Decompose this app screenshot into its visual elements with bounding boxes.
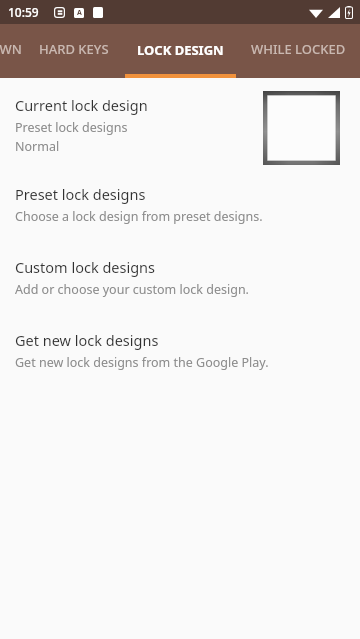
button[interactable]: Lock design preview <box>263 91 340 165</box>
button[interactable]: LOCK DESIGN <box>125 24 236 78</box>
staticText: Preset lock designs <box>15 184 146 204</box>
staticText: Get new lock designs <box>15 330 159 350</box>
staticText: LOCK DESIGN <box>137 41 224 59</box>
staticText: Get new lock designs from the Google Pla… <box>15 354 269 371</box>
button[interactable]: Custom lock designs <box>0 253 360 302</box>
staticText: Custom lock designs <box>15 257 155 277</box>
staticText: HARD KEYS <box>39 40 109 58</box>
button[interactable]: HARD KEYS <box>24 24 124 74</box>
button[interactable]: Current lock design <box>0 78 360 168</box>
button[interactable]: Preset lock designs <box>0 180 360 229</box>
staticText: A <box>77 8 82 18</box>
staticText: DOWN <box>0 40 22 58</box>
staticText: Add or choose your custom lock design. <box>15 281 249 298</box>
button[interactable]: DOWN <box>0 24 34 74</box>
button[interactable]: Get new lock designs <box>0 326 360 375</box>
staticText: Current lock design <box>15 95 148 115</box>
staticText: 10:59 <box>8 4 39 20</box>
staticText: Preset lock designs <box>15 119 128 136</box>
staticText: Normal <box>15 138 60 155</box>
button[interactable]: WHILE LOCKED <box>240 24 356 74</box>
staticText: Choose a lock design from preset designs… <box>15 208 263 225</box>
staticText: WHILE LOCKED <box>251 40 346 58</box>
